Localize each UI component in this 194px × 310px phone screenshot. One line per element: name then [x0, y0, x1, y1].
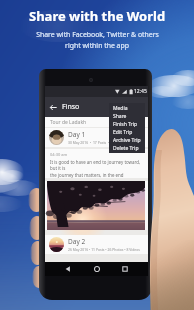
button[interactable]: Archive Trip: [113, 136, 145, 144]
button[interactable]: Tour de Ladakh: [45, 117, 148, 127]
button[interactable]: Media: [113, 104, 145, 112]
staticText: Share: [113, 113, 127, 120]
staticText: 12:45: [134, 88, 147, 95]
staticText: Archive Trip: [113, 137, 141, 144]
button[interactable]: Day 1: [45, 128, 148, 147]
staticText: 26 May 2016 • 11 Posts • 26 Photos • 8 V…: [68, 247, 140, 252]
staticText: Day 2: [68, 237, 86, 246]
button[interactable]: 04:30 am: [45, 149, 148, 178]
staticText: Share with the World: [29, 7, 166, 25]
button[interactable]: Back: [45, 97, 148, 117]
staticText: 30 May 2016 • 17 Posts • 35 Photos: [68, 140, 127, 145]
staticText: Day 1: [68, 130, 86, 139]
staticText: Share with Facebook, Twitter & others: [36, 30, 159, 39]
staticText: Delete Trip: [113, 145, 139, 152]
staticText: the journey that matters, in the end: [50, 172, 124, 178]
button[interactable]: Back: [62, 263, 74, 275]
button[interactable]: Finish Trip: [113, 120, 145, 128]
button[interactable]: Delete Trip: [113, 144, 145, 152]
staticText: right within the app: [65, 41, 129, 50]
staticText: Media: [113, 105, 128, 112]
button[interactable]: Back: [47, 101, 60, 114]
staticText: Finso: [62, 102, 80, 112]
button[interactable]: Photo: [47, 181, 145, 230]
staticText: It is good to have an end to journey tow…: [50, 159, 145, 171]
button[interactable]: Home: [91, 263, 103, 275]
staticText: Finish Trip: [113, 121, 138, 128]
staticText: 04:30 am: [50, 152, 68, 157]
button[interactable]: Recents: [119, 263, 131, 275]
button[interactable]: Share: [113, 112, 145, 120]
button[interactable]: Day 2: [45, 235, 148, 254]
button[interactable]: Edit Trip: [113, 128, 145, 136]
staticText: Tour de Ladakh: [50, 119, 87, 126]
staticText: Edit Trip: [113, 129, 133, 136]
